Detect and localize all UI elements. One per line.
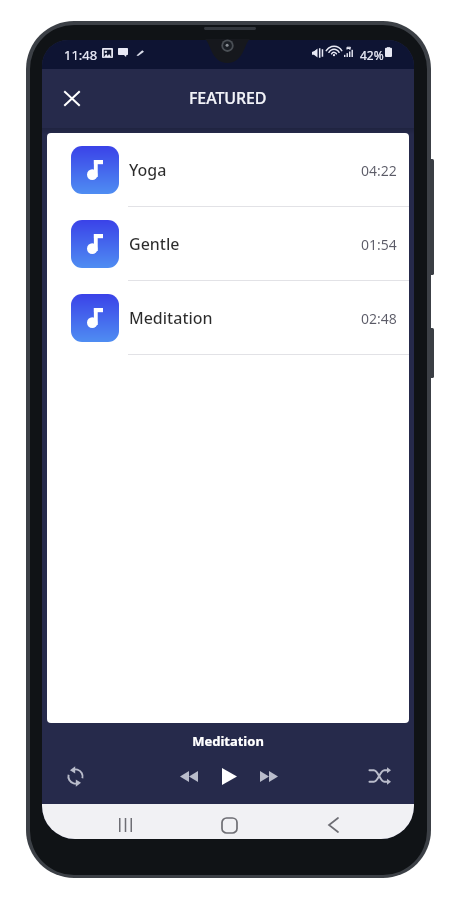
button[interactable]: Next	[253, 760, 285, 792]
button[interactable]: Meditation	[47, 281, 409, 355]
button[interactable]: Repeat	[59, 760, 91, 792]
button[interactable]: Yoga	[47, 133, 409, 207]
button[interactable]: Gentle	[47, 207, 409, 281]
staticText: Gentle	[129, 233, 180, 255]
button[interactable]: Home	[214, 810, 244, 839]
button[interactable]: Previous	[173, 760, 205, 792]
staticText: FEATURED	[189, 87, 267, 109]
button[interactable]: Recents	[110, 810, 140, 839]
staticText: 04:22	[361, 161, 397, 180]
button[interactable]: Play	[213, 760, 245, 792]
staticText: 01:54	[361, 235, 397, 254]
staticText: Yoga	[129, 159, 167, 181]
staticText: 02:48	[361, 309, 397, 328]
staticText: Meditation	[129, 307, 213, 329]
button[interactable]: Close	[54, 80, 90, 116]
staticText: Meditation	[42, 732, 414, 750]
staticText: 42%	[360, 47, 384, 63]
button[interactable]: Back	[318, 810, 348, 839]
staticText: 11:48	[64, 46, 98, 64]
button[interactable]: Shuffle	[364, 760, 396, 792]
